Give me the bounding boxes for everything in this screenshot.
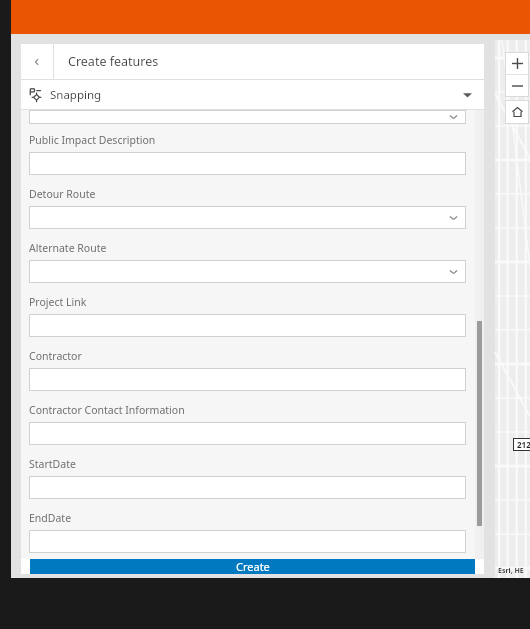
staticText: StartDate [29, 457, 76, 471]
staticText: Detour Route [29, 187, 96, 201]
button[interactable] [29, 260, 466, 283]
staticText: 212 [517, 439, 530, 450]
staticText: Project Link [29, 295, 87, 309]
staticText: Alternate Route [29, 241, 107, 255]
button[interactable] [29, 314, 466, 337]
staticText: EndDate [29, 511, 72, 525]
staticText: Contractor [29, 349, 82, 363]
button[interactable]: Snapping [21, 80, 484, 109]
button[interactable] [29, 368, 466, 391]
button[interactable]: Create [30, 559, 475, 574]
staticText: Esri, HE [498, 566, 524, 576]
button[interactable] [29, 476, 466, 499]
button[interactable]: Zoom in [505, 52, 529, 74]
button[interactable] [29, 152, 466, 175]
button[interactable]: Back [21, 44, 53, 79]
staticText: Contractor Contact Information [29, 403, 185, 417]
button[interactable] [29, 206, 466, 229]
staticText: Public Impact Description [29, 133, 156, 147]
staticText: Snapping [50, 87, 102, 103]
button[interactable] [29, 530, 466, 553]
button[interactable]: Zoom out [505, 75, 529, 97]
staticText: Create [236, 559, 270, 574]
button[interactable]: Home [505, 100, 529, 124]
staticText: Create features [68, 53, 159, 70]
button[interactable] [29, 422, 466, 445]
